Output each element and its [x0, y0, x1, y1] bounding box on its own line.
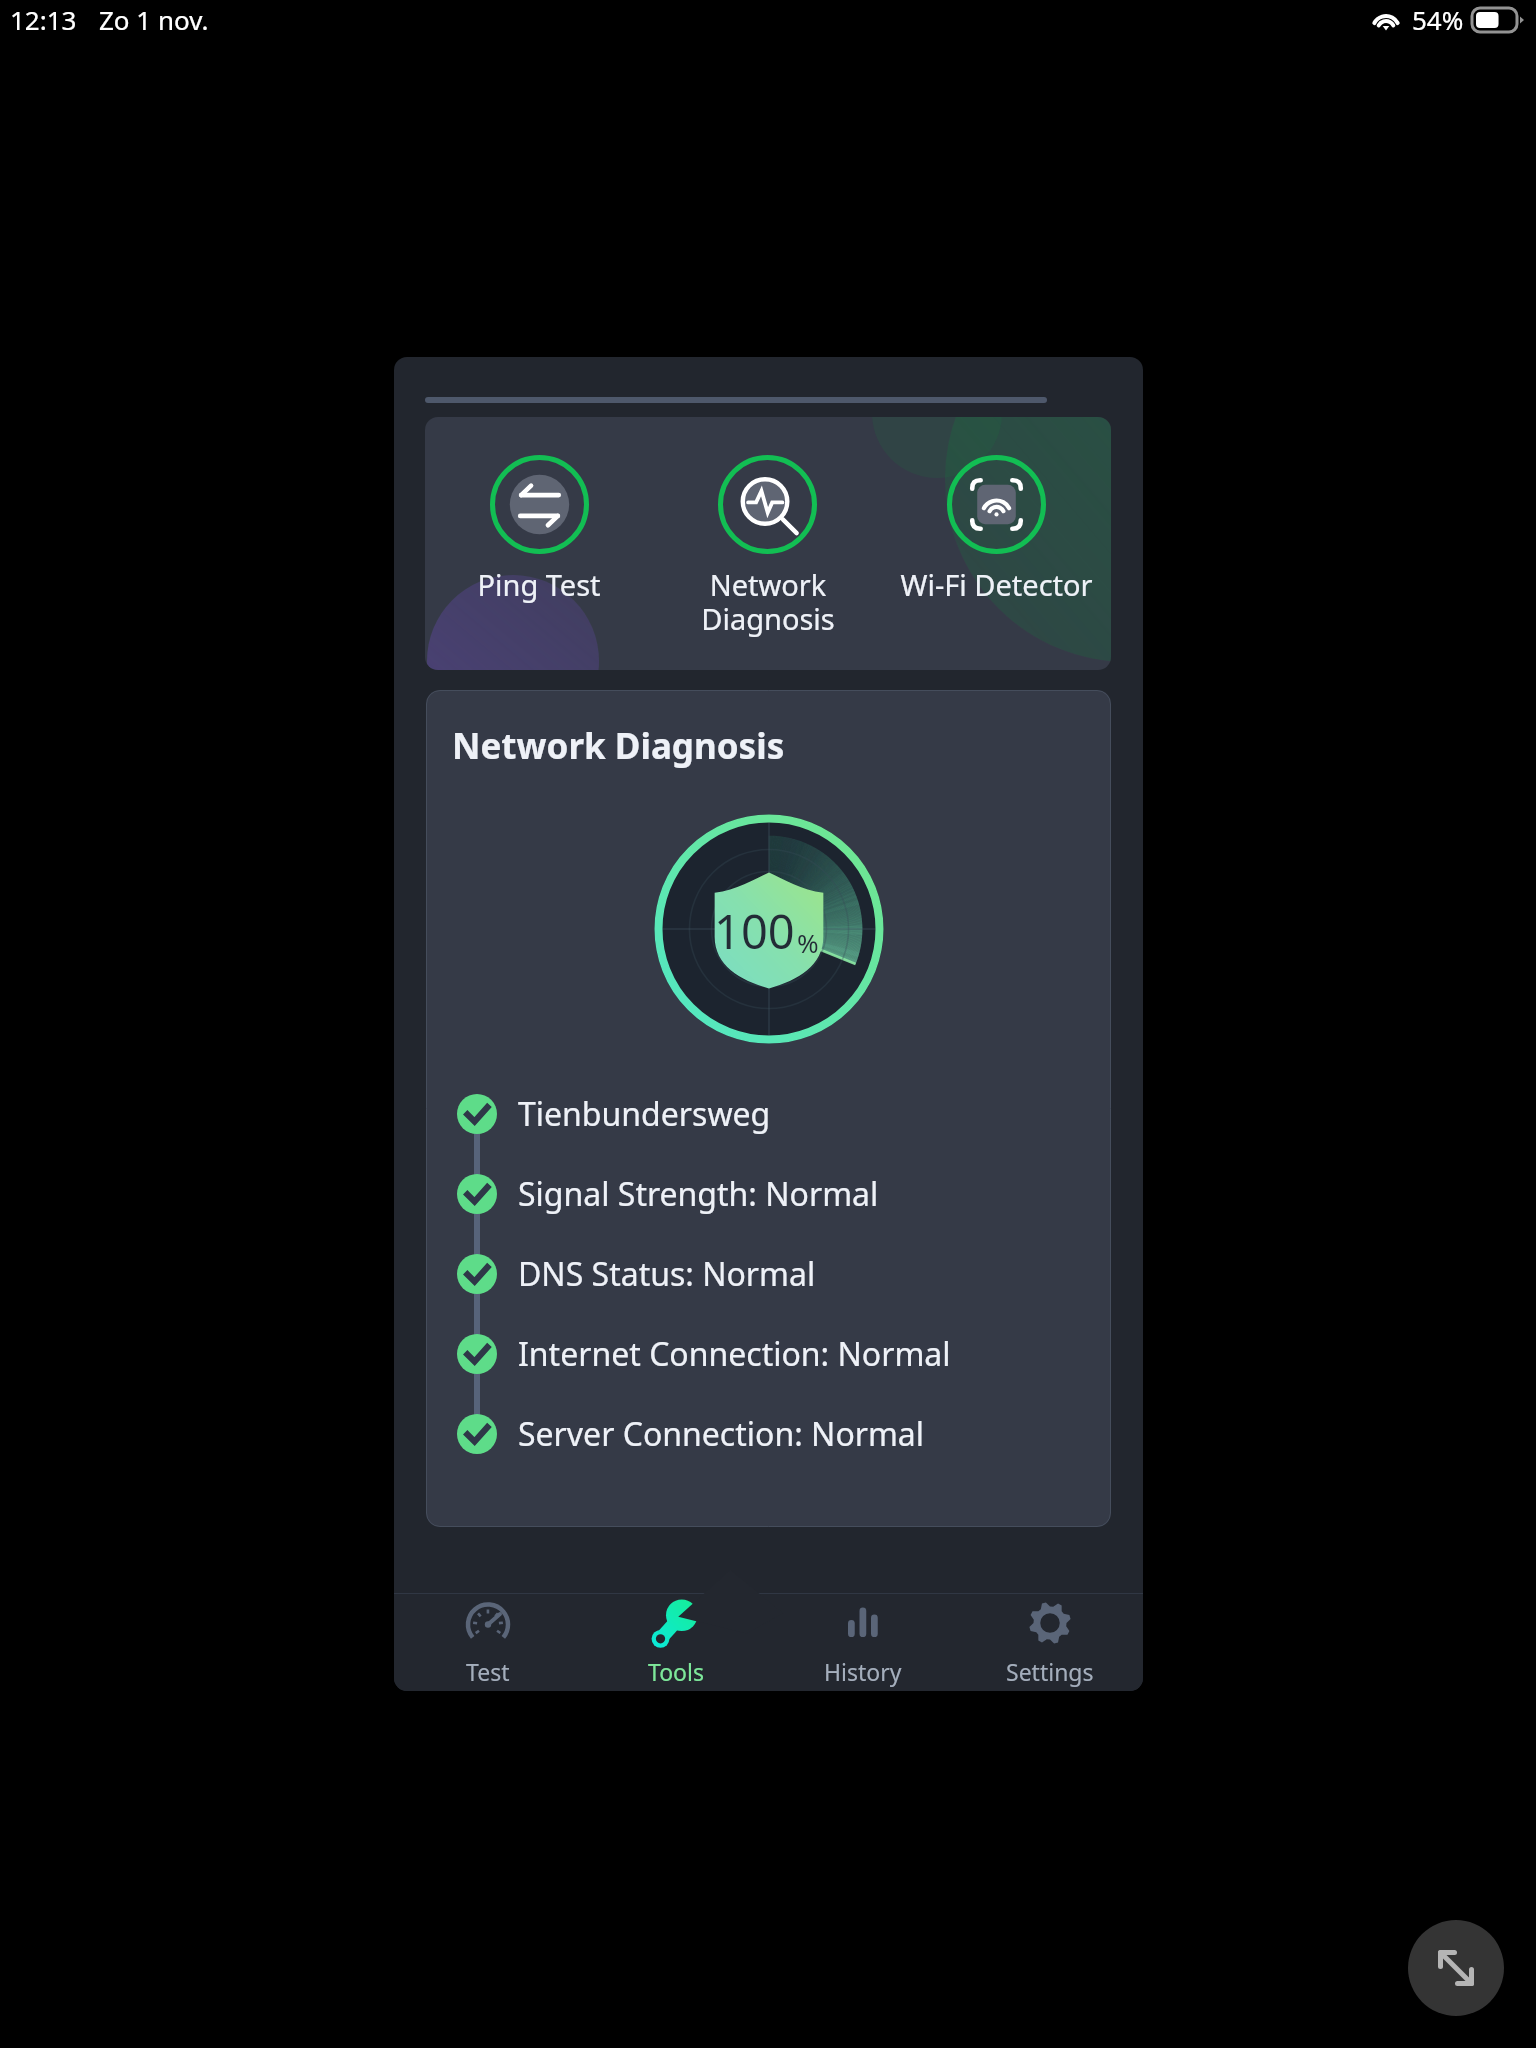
staticText: Internet Connection: Normal: [518, 1332, 951, 1376]
button[interactable]: Expand: [1408, 1920, 1504, 2016]
staticText: 100: [714, 899, 795, 963]
staticText: Network Diagnosis: [701, 565, 835, 638]
button[interactable]: History: [769, 1594, 956, 1691]
button[interactable]: Server Connection: Normal: [457, 1394, 1077, 1474]
button[interactable]: Test: [394, 1594, 582, 1691]
button[interactable]: Signal Strength: Normal: [457, 1154, 1077, 1234]
button[interactable]: Internet Connection: Normal: [457, 1314, 1077, 1394]
staticText: History: [824, 1656, 902, 1687]
staticText: %: [797, 925, 819, 960]
staticText: Signal Strength: Normal: [518, 1172, 879, 1216]
button[interactable]: DNS Status: Normal: [457, 1234, 1077, 1314]
button[interactable]: Wi-Fi Detector: [882, 417, 1111, 670]
staticText: Ping Test: [477, 565, 601, 604]
button[interactable]: Ping Test: [425, 417, 653, 670]
staticText: 54%: [1412, 2, 1464, 37]
staticText: DNS Status: Normal: [518, 1252, 816, 1296]
staticText: Test: [466, 1656, 510, 1687]
staticText: Tienbundersweg: [518, 1092, 771, 1136]
staticText: Network Diagnosis: [452, 722, 785, 770]
button[interactable]: Settings: [956, 1594, 1143, 1691]
button[interactable]: Network Diagnosis: [653, 417, 882, 670]
button[interactable]: Tools: [582, 1594, 769, 1691]
staticText: Wi-Fi Detector: [900, 565, 1093, 604]
staticText: Tools: [648, 1656, 704, 1687]
staticText: Settings: [1006, 1656, 1094, 1687]
staticText: Server Connection: Normal: [518, 1412, 925, 1456]
staticText: Zo 1 nov.: [99, 2, 209, 37]
button[interactable]: Tienbundersweg: [457, 1074, 1077, 1154]
staticText: 12:13: [10, 2, 77, 37]
